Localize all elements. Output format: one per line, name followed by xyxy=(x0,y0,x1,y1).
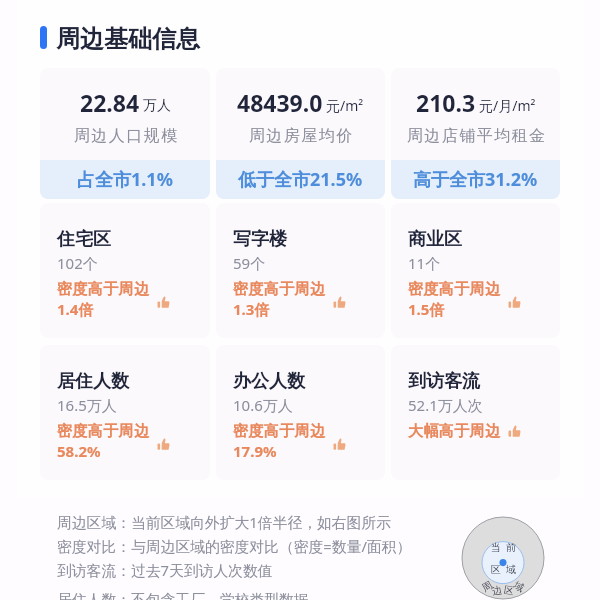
staticText: 59个 xyxy=(233,253,266,273)
staticText: 17.9% xyxy=(233,441,277,461)
staticText: 16.5万人 xyxy=(57,395,117,415)
staticText: 域 xyxy=(511,578,527,595)
staticText: 前 xyxy=(506,541,516,554)
staticText: 58.2% xyxy=(57,441,101,461)
staticText: 52.1万人次 xyxy=(408,395,483,415)
button[interactable]: 周边基础信息 xyxy=(40,24,200,54)
staticText: 办公人数 xyxy=(233,370,305,393)
staticText: 居住人数：不包含工厂、学校类型数据 xyxy=(57,591,309,600)
other: 点赞 xyxy=(333,438,346,450)
button[interactable]: 居住人数 xyxy=(40,345,210,480)
staticText: 周边房屋均价 xyxy=(248,126,353,146)
staticText: 密度对比：与周边区域的密度对比（密度=数量/面积） xyxy=(57,536,412,556)
staticText: 当 xyxy=(491,541,501,554)
button[interactable]: 到访客流 xyxy=(391,345,560,480)
staticText: 102个 xyxy=(57,253,98,273)
staticText: 周边区域：当前区域向外扩大1倍半径，如右图所示 xyxy=(57,512,391,532)
staticText: 域 xyxy=(506,563,516,576)
staticText: 商业区 xyxy=(408,228,462,251)
staticText: 22.84 xyxy=(80,87,140,118)
staticText: 居住人数 xyxy=(57,370,129,393)
button[interactable]: 商业区 xyxy=(391,203,560,338)
other: 点赞 xyxy=(508,296,521,308)
staticText: 周边人口规模 xyxy=(73,126,178,146)
staticText: 占全市1.1% xyxy=(77,167,173,192)
other: 点赞 xyxy=(333,296,346,308)
staticText: 10.6万人 xyxy=(233,395,293,415)
button[interactable]: 办公人数 xyxy=(216,345,385,480)
button[interactable]: 写字楼 xyxy=(216,203,385,338)
button[interactable]: 22.84 xyxy=(40,68,210,199)
button[interactable]: 210.3 xyxy=(391,68,560,199)
staticText: 密度高于周边 xyxy=(233,422,326,441)
staticText: 周边基础信息 xyxy=(56,24,200,54)
other: 点赞 xyxy=(157,296,170,308)
staticText: 1.3倍 xyxy=(233,299,270,319)
staticText: 密度高于周边 xyxy=(57,422,150,441)
staticText: 住宅区 xyxy=(57,228,111,251)
staticText: 大幅高于周边 xyxy=(408,422,501,441)
staticText: 到访客流：过去7天到访人次数值 xyxy=(57,560,273,580)
staticText: 1.4倍 xyxy=(57,299,94,319)
staticText: 密度高于周边 xyxy=(57,280,150,299)
button[interactable]: 住宅区 xyxy=(40,203,210,338)
other: 点赞 xyxy=(508,425,521,437)
staticText: 元/m² xyxy=(326,96,364,115)
staticText: 11个 xyxy=(408,253,441,273)
staticText: 210.3 xyxy=(416,87,476,118)
staticText: 1.5倍 xyxy=(408,299,445,319)
staticText: 区 xyxy=(491,563,501,576)
staticText: 高于全市31.2% xyxy=(413,167,538,192)
staticText: 48439.0 xyxy=(237,87,323,118)
staticText: 密度高于周边 xyxy=(408,280,501,299)
staticText: 边 xyxy=(491,583,503,598)
other: 点赞 xyxy=(157,438,170,450)
staticText: 周 xyxy=(479,578,495,595)
staticText: 写字楼 xyxy=(233,228,287,251)
staticText: 万人 xyxy=(143,97,171,115)
staticText: 元/月/m² xyxy=(479,96,536,115)
staticText: 低于全市21.5% xyxy=(238,167,363,192)
staticText: 到访客流 xyxy=(408,370,480,393)
staticText: 密度高于周边 xyxy=(233,280,326,299)
staticText: 周边店铺平均租金 xyxy=(406,126,546,146)
button[interactable]: 48439.0 xyxy=(216,68,385,199)
staticText: 区 xyxy=(503,583,515,598)
